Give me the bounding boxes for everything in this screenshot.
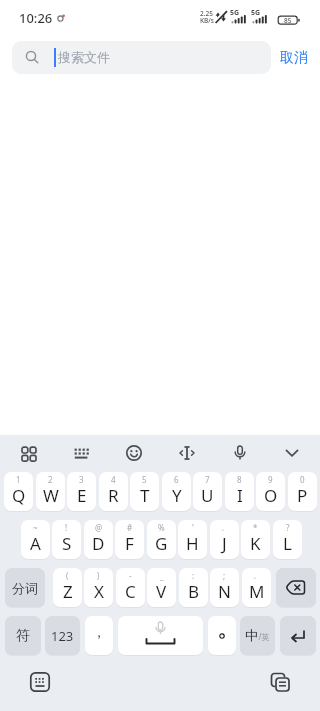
- button[interactable]: 分词: [5, 568, 45, 607]
- staticText: L: [283, 532, 292, 555]
- staticText: 1: [16, 474, 21, 485]
- staticText: U: [201, 484, 214, 507]
- staticText: V: [156, 580, 167, 603]
- button[interactable]: A: [21, 520, 50, 559]
- staticText: Y: [172, 484, 182, 507]
- button[interactable]: 123: [45, 616, 80, 655]
- button[interactable]: H: [178, 520, 207, 559]
- staticText: (: [66, 570, 69, 581]
- button[interactable]: [12, 437, 44, 469]
- staticText: 符: [16, 627, 30, 645]
- staticText: 85: [284, 16, 292, 25]
- button[interactable]: Y: [162, 472, 191, 511]
- staticText: P: [297, 484, 308, 507]
- button[interactable]: [264, 666, 296, 698]
- staticText: ?: [286, 522, 290, 533]
- button[interactable]: K: [241, 520, 270, 559]
- staticText: B: [188, 580, 200, 603]
- button[interactable]: [224, 437, 256, 469]
- staticText: #: [127, 522, 133, 533]
- staticText: 0: [300, 474, 305, 485]
- button[interactable]: P: [288, 472, 317, 511]
- staticText: 2: [48, 474, 53, 485]
- button[interactable]: O: [256, 472, 285, 511]
- staticText: 6: [174, 474, 179, 485]
- button[interactable]: V: [147, 568, 176, 607]
- staticText: 分词: [12, 580, 38, 596]
- button[interactable]: Z: [53, 568, 82, 607]
- button[interactable]: C: [116, 568, 145, 607]
- button[interactable]: [118, 616, 203, 655]
- button[interactable]: [24, 666, 56, 698]
- button[interactable]: S: [52, 520, 81, 559]
- staticText: ，: [92, 624, 106, 642]
- staticText: ;: [223, 570, 226, 581]
- button[interactable]: 符: [5, 616, 41, 655]
- staticText: A: [30, 532, 41, 555]
- staticText: 9: [268, 474, 273, 485]
- staticText: W: [43, 484, 59, 507]
- staticText: Q: [12, 484, 26, 507]
- staticText: G: [155, 532, 168, 555]
- staticText: Z: [63, 580, 73, 603]
- staticText: 5G: [251, 8, 261, 18]
- button[interactable]: X: [84, 568, 113, 607]
- staticText: S: [62, 532, 72, 555]
- staticText: %: [158, 522, 165, 533]
- staticText: 7: [205, 474, 210, 485]
- staticText: N: [218, 580, 231, 603]
- staticText: J: [222, 532, 227, 555]
- staticText: -: [129, 570, 132, 581]
- staticText: 4: [111, 474, 116, 485]
- button[interactable]: G: [147, 520, 176, 559]
- button[interactable]: 搜索文件: [12, 41, 271, 74]
- button[interactable]: R: [99, 472, 128, 511]
- button[interactable]: 取消: [274, 41, 314, 74]
- staticText: O: [264, 484, 278, 507]
- staticText: 123: [51, 627, 74, 645]
- button[interactable]: Q: [4, 472, 33, 511]
- staticText: !: [65, 522, 68, 533]
- button[interactable]: [118, 437, 150, 469]
- button[interactable]: D: [84, 520, 113, 559]
- staticText: 搜索文件: [58, 49, 110, 65]
- button[interactable]: T: [130, 472, 159, 511]
- staticText: 5G: [230, 8, 240, 18]
- staticText: @: [95, 522, 103, 533]
- button[interactable]: [208, 616, 236, 655]
- button[interactable]: M: [242, 568, 271, 607]
- staticText: ~: [33, 522, 38, 533]
- button[interactable]: ，: [85, 616, 113, 655]
- button[interactable]: [171, 437, 203, 469]
- staticText: KB/s: [200, 16, 215, 25]
- staticText: H: [186, 532, 199, 555]
- button[interactable]: N: [210, 568, 239, 607]
- button[interactable]: 中/英: [240, 616, 275, 655]
- staticText: I: [237, 484, 243, 507]
- button[interactable]: L: [273, 520, 302, 559]
- staticText: D: [92, 532, 105, 555]
- staticText: T: [140, 484, 150, 507]
- button[interactable]: U: [193, 472, 222, 511]
- button[interactable]: [276, 437, 308, 469]
- button[interactable]: [65, 437, 97, 469]
- staticText: 中/英: [245, 627, 270, 644]
- button[interactable]: I: [225, 472, 254, 511]
- staticText: 、: [253, 570, 261, 580]
- button[interactable]: B: [179, 568, 208, 607]
- button[interactable]: [276, 568, 316, 607]
- staticText: M: [249, 580, 265, 603]
- button[interactable]: F: [115, 520, 144, 559]
- staticText: C: [125, 580, 136, 603]
- staticText: 、: [221, 522, 229, 532]
- staticText: 8: [237, 474, 242, 485]
- button[interactable]: W: [36, 472, 65, 511]
- button[interactable]: [280, 616, 316, 655]
- button[interactable]: E: [67, 472, 96, 511]
- staticText: X: [94, 580, 104, 603]
- staticText: ': [192, 522, 194, 533]
- staticText: K: [250, 532, 261, 555]
- staticText: *: [253, 522, 258, 533]
- staticText: E: [77, 484, 87, 507]
- button[interactable]: J: [210, 520, 239, 559]
